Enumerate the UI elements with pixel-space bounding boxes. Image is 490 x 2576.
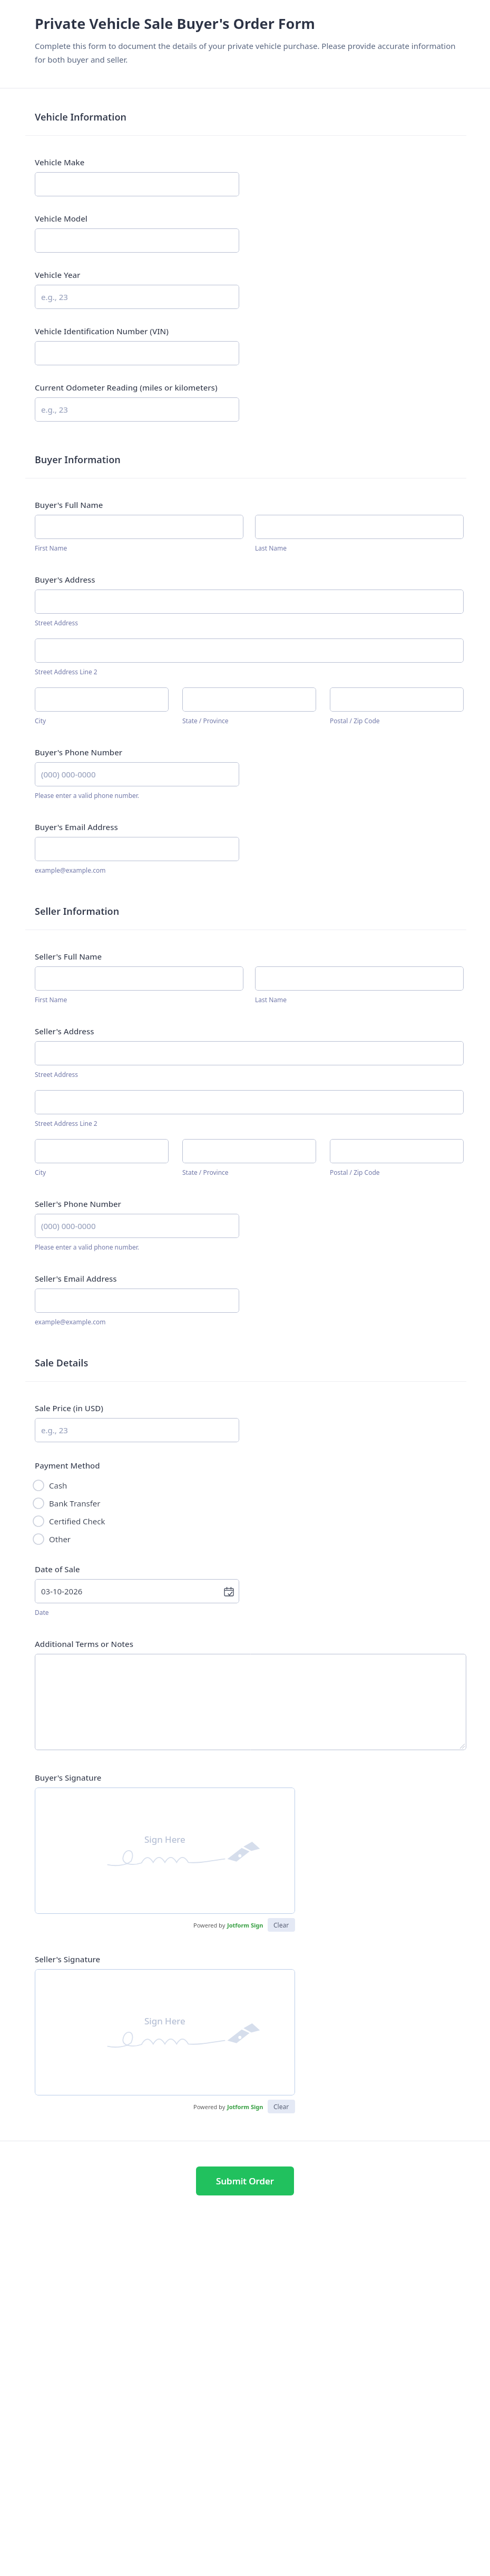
staticText: Vehicle Year [35,269,81,280]
staticText: Vehicle Identification Number (VIN) [35,326,169,336]
staticText: Bank Transfer [49,1498,101,1509]
button[interactable]: Last name [255,966,464,991]
button[interactable]: Bank Transfer [33,1494,101,1512]
staticText: e.g., 23 [41,404,68,415]
button[interactable]: Postal or zip code [330,1139,464,1163]
staticText: Sign Here [144,2015,185,2027]
staticText: Additional Terms or Notes [35,1639,133,1649]
button[interactable]: Odometer reading [35,397,239,422]
staticText: e.g., 23 [41,1425,68,1435]
button[interactable]: Clear [268,1918,295,1932]
staticText: Last Name [255,544,287,552]
button[interactable]: State or province [182,1139,316,1163]
button[interactable]: Clear [268,2100,295,2113]
button[interactable]: Vehicle model [35,228,239,253]
staticText: Clear [273,1921,289,1929]
staticText: e.g., 23 [41,292,68,302]
staticText: Vehicle Model [35,213,87,224]
staticText: Please enter a valid phone number. [35,791,140,800]
button[interactable]: Date of sale [35,1579,239,1603]
staticText: Vehicle Make [35,157,85,167]
staticText: (000) 000-0000 [41,1221,96,1231]
staticText: State / Province [182,1168,229,1176]
staticText: Buyer's Email Address [35,822,118,832]
staticText: Clear [273,2102,289,2111]
button[interactable]: State or province [182,687,316,712]
button[interactable]: Last name [255,515,464,539]
staticText: Street Address [35,618,79,627]
staticText: 03-10-2026 [41,1586,83,1596]
staticText: Street Address Line 2 [35,1119,97,1127]
staticText: Seller's Signature [35,1954,101,1964]
staticText: Certified Check [49,1516,105,1526]
staticText: Sale Price (in USD) [35,1403,103,1413]
button[interactable]: Street address line 2 [35,1090,464,1114]
button[interactable]: Cash [33,1476,67,1494]
staticText: Complete this form to document the detai… [35,41,458,65]
staticText: City [35,716,46,725]
staticText: Other [49,1534,71,1544]
staticText: Seller Information [35,905,120,918]
button[interactable]: Submit Order [196,2166,294,2195]
staticText: Vehicle Information [35,111,126,124]
staticText: Street Address Line 2 [35,667,97,676]
staticText: Postal / Zip Code [330,1168,380,1176]
button[interactable]: Buyer's Signature signature pad [35,1788,295,1914]
button[interactable]: Seller's Signature signature pad [35,1969,295,2095]
staticText: Buyer's Address [35,574,95,585]
button[interactable]: Sale price [35,1418,239,1442]
staticText: Submit Order [216,2175,274,2187]
staticText: Buyer Information [35,453,121,466]
button[interactable]: VIN [35,341,239,365]
button[interactable]: First name [35,515,243,539]
staticText: Buyer's Signature [35,1772,102,1783]
button[interactable]: Certified Check [33,1512,105,1530]
button[interactable]: Vehicle make [35,172,239,196]
button[interactable]: Phone number [35,762,239,786]
button[interactable]: Street address [35,590,464,614]
staticText: Sign Here [144,1833,185,1845]
button[interactable]: Street address line 2 [35,638,464,663]
button[interactable]: City [35,687,169,712]
staticText: Last Name [255,995,287,1004]
staticText: Seller's Phone Number [35,1199,121,1209]
button[interactable]: Postal or zip code [330,687,464,712]
staticText: Buyer's Full Name [35,500,103,510]
staticText: Please enter a valid phone number. [35,1243,140,1251]
staticText: Street Address [35,1070,79,1079]
staticText: City [35,1168,46,1176]
staticText: Seller's Full Name [35,951,102,962]
staticText: Seller's Email Address [35,1273,117,1284]
button[interactable]: Email address [35,837,239,861]
button[interactable]: Street address [35,1041,464,1065]
button[interactable]: Phone number [35,1214,239,1238]
staticText: Date of Sale [35,1564,80,1574]
staticText: example@example.com [35,1317,106,1326]
staticText: State / Province [182,716,229,725]
staticText: Buyer's Phone Number [35,747,123,757]
button[interactable]: Vehicle year [35,285,239,309]
staticText: Sale Details [35,1356,89,1370]
staticText: Powered by [193,1921,227,1929]
staticText: First Name [35,995,67,1004]
staticText: Postal / Zip Code [330,716,380,725]
staticText: Powered by [193,2103,227,2111]
button[interactable]: Email address [35,1289,239,1313]
staticText: Jotform Sign [227,2103,263,2111]
staticText: Jotform Sign [227,1921,263,1929]
button[interactable]: First name [35,966,243,991]
staticText: Seller's Address [35,1026,94,1036]
button[interactable]: Other [33,1530,71,1548]
staticText: Private Vehicle Sale Buyer's Order Form [35,14,315,33]
staticText: Cash [49,1480,67,1491]
staticText: Payment Method [35,1460,100,1471]
staticText: First Name [35,544,67,552]
staticText: example@example.com [35,866,106,874]
button[interactable]: City [35,1139,169,1163]
staticText: Date [35,1608,49,1616]
staticText: (000) 000-0000 [41,769,96,780]
button[interactable]: Additional terms or notes [35,1654,466,1750]
staticText: Current Odometer Reading (miles or kilom… [35,382,218,393]
